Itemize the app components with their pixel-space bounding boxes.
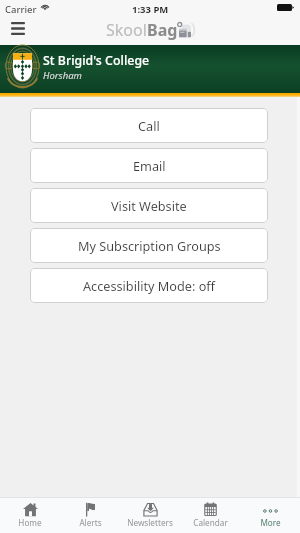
button[interactable]: Call [30,108,268,143]
staticText: Call [138,117,160,134]
staticText: My Subscription Groups [78,237,221,254]
button[interactable]: Newsletters [120,498,180,533]
staticText: Horsham [43,69,82,82]
staticText: Visit Website [111,197,187,214]
staticText: Newsletters [127,517,173,528]
staticText: Alerts [79,517,102,528]
button[interactable]: Menu [4,18,31,38]
staticText: 1:33 PM [132,3,169,16]
button[interactable]: Home [0,498,60,533]
staticText: St Brigid's College [43,52,150,69]
staticText: Home [18,517,42,528]
staticText: Calendar [193,517,228,528]
staticText: More [260,517,281,528]
button[interactable]: My Subscription Groups [30,228,268,263]
button[interactable]: Email [30,148,268,183]
button[interactable]: Alerts [60,498,120,533]
staticText: Accessibility Mode: off [83,277,216,294]
button[interactable]: More [240,498,300,533]
staticText: Skool [106,19,147,41]
staticText: Email [133,157,166,174]
staticText: Carrier [5,3,37,16]
button[interactable]: Calendar [180,498,240,533]
staticText: Bag [147,19,178,41]
button[interactable]: Accessibility Mode: off [30,268,268,303]
button[interactable]: Visit Website [30,188,268,223]
